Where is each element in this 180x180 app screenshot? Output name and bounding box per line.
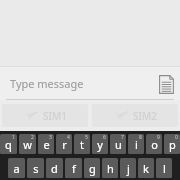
button[interactable]: s (27, 158, 44, 178)
button[interactable]: h (102, 158, 118, 178)
button[interactable]: 1 (0, 134, 17, 154)
button[interactable]: 7 (110, 134, 126, 154)
button[interactable]: 8 (128, 134, 144, 154)
staticText: k (143, 161, 149, 176)
staticText: w (23, 137, 32, 152)
staticText: u (115, 137, 122, 152)
staticText: 5 (85, 134, 88, 141)
button[interactable]: 2 (19, 134, 36, 154)
button[interactable]: 3 (38, 134, 54, 154)
staticText: 3 (49, 134, 52, 141)
staticText: s (33, 161, 39, 176)
staticText: h (107, 161, 114, 176)
button[interactable]: 5 (74, 134, 90, 154)
button[interactable]: Type message (0, 67, 152, 100)
button[interactable]: f (65, 158, 82, 178)
staticText: j (127, 161, 130, 176)
staticText: 9 (157, 134, 160, 141)
staticText: t (80, 137, 84, 152)
staticText: 1 (12, 134, 15, 141)
button[interactable]: 6 (92, 134, 108, 154)
staticText: y (97, 137, 103, 152)
staticText: r (62, 137, 67, 152)
button[interactable]: Message templates (152, 70, 180, 98)
staticText: d (51, 161, 58, 176)
button[interactable]: k (138, 158, 154, 178)
button[interactable]: a (8, 158, 25, 178)
staticText: l (163, 161, 166, 176)
button[interactable]: SIM2 (92, 104, 178, 127)
staticText: g (89, 161, 96, 176)
staticText: e (43, 137, 50, 152)
staticText: 8 (139, 134, 142, 141)
button[interactable]: 4 (56, 134, 72, 154)
button[interactable]: SIM1 (2, 104, 88, 127)
staticText: 7 (121, 134, 124, 141)
button[interactable]: 0 (164, 134, 180, 154)
staticText: i (135, 137, 138, 152)
staticText: o (151, 137, 158, 152)
staticText: SIM2 (133, 109, 157, 123)
staticText: 6 (103, 134, 106, 141)
button[interactable]: 9 (146, 134, 162, 154)
staticText: q (5, 137, 12, 152)
staticText: a (13, 161, 20, 176)
staticText: 0 (175, 134, 178, 141)
button[interactable]: g (84, 158, 100, 178)
staticText: f (72, 161, 76, 176)
staticText: Type message (10, 76, 84, 91)
staticText: 4 (67, 134, 70, 141)
button[interactable]: l (156, 158, 172, 178)
staticText: SIM1 (43, 109, 67, 123)
staticText: p (169, 137, 176, 152)
staticText: 2 (31, 134, 34, 141)
button[interactable]: j (120, 158, 136, 178)
button[interactable]: d (46, 158, 63, 178)
